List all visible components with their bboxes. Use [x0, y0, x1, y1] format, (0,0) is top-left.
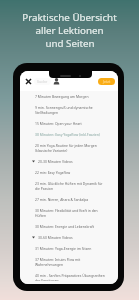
button[interactable]: 27 min. Nieren, Ahara & Sankalpa [35, 194, 107, 205]
button[interactable]: 7 Minuten Bewegung am Morgen [35, 91, 107, 102]
staticText: 37 Minuten: Intuies Flow mit Wahrnehmung… [35, 257, 107, 267]
button[interactable]: 20-30 Minuten Videos [35, 156, 107, 167]
staticText: 30 Minuten: Flexibilität und Kraft in de… [35, 208, 107, 218]
button[interactable]: 23 min. Glückliche Hüften mit Dynamik fü… [35, 178, 107, 194]
button[interactable]: 40 min - Sanftes Präparatives Übungsreih… [35, 270, 107, 284]
staticText: Jetzt [103, 79, 111, 84]
button[interactable]: 30 Minuten: Energie und Lebenskraft [35, 221, 107, 232]
staticText: Praktische Übersicht [22, 11, 117, 24]
staticText: 30-60 Minuten Videos [38, 235, 73, 240]
staticText: 22 min: Easy Yogaflow [35, 170, 71, 175]
staticText: 15 Minuten: Open your Heart [35, 121, 82, 126]
button[interactable]: 20 min Yoga-Routine für jeden Morgen (kl… [35, 140, 107, 156]
button[interactable]: 30 Minuten: Flexibilität und Kraft in de… [35, 205, 107, 221]
staticText: aller Lektionen [35, 24, 104, 37]
staticText: Suche [37, 79, 48, 84]
button[interactable]: 9 min. Sonnengruß und dynamische Stellha… [35, 102, 107, 118]
staticText: und Seiten [45, 37, 95, 50]
staticText: 27 min. Nieren, Ahara & Sankalpa [35, 197, 89, 202]
staticText: 20 min Yoga-Routine für jeden Morgen (kl… [35, 143, 107, 153]
button[interactable]: 22 min: Easy Yogaflow [35, 167, 107, 178]
button[interactable]: Close [23, 76, 34, 87]
staticText: 23 min. Glückliche Hüften mit Dynamik fü… [35, 181, 107, 191]
staticText: 20-30 Minuten Videos [38, 159, 73, 164]
button[interactable]: 30 Minuten: Easy Yogaflow (inkl.Faszien) [35, 129, 107, 140]
button[interactable]: 30-60 Minuten Videos [35, 232, 107, 243]
staticText: 40 min - Sanftes Präparatives Übungsreih… [35, 273, 107, 281]
staticText: 30 Minuten: Easy Yogaflow (inkl.Faszien) [35, 132, 100, 137]
button[interactable]: Suche [34, 78, 51, 85]
staticText: 9 min. Sonnengruß und dynamische Stellha… [35, 105, 107, 115]
button[interactable]: 15 Minuten: Open your Heart [35, 118, 107, 129]
staticText: 7 Minuten Bewegung am Morgen [35, 94, 89, 99]
button[interactable]: Jetzt [98, 78, 115, 85]
button[interactable]: 31 Minuten: Yoga-Energie im Sitzen [35, 243, 107, 254]
button[interactable]: Profile [51, 76, 61, 86]
button[interactable]: 37 Minuten: Intuies Flow mit Wahrnehmung… [35, 254, 107, 270]
staticText: 31 Minuten: Yoga-Energie im Sitzen [35, 246, 92, 251]
staticText: 30 Minuten: Energie und Lebenskraft [35, 224, 94, 229]
